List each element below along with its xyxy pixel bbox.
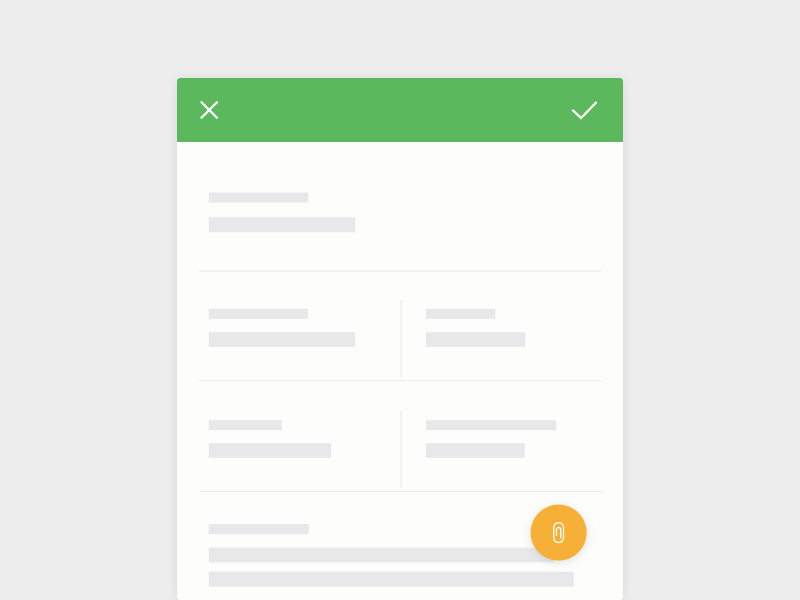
button[interactable]: Close (177, 78, 241, 142)
button[interactable]: Attach file (531, 505, 587, 561)
button[interactable]: Save (552, 78, 616, 142)
